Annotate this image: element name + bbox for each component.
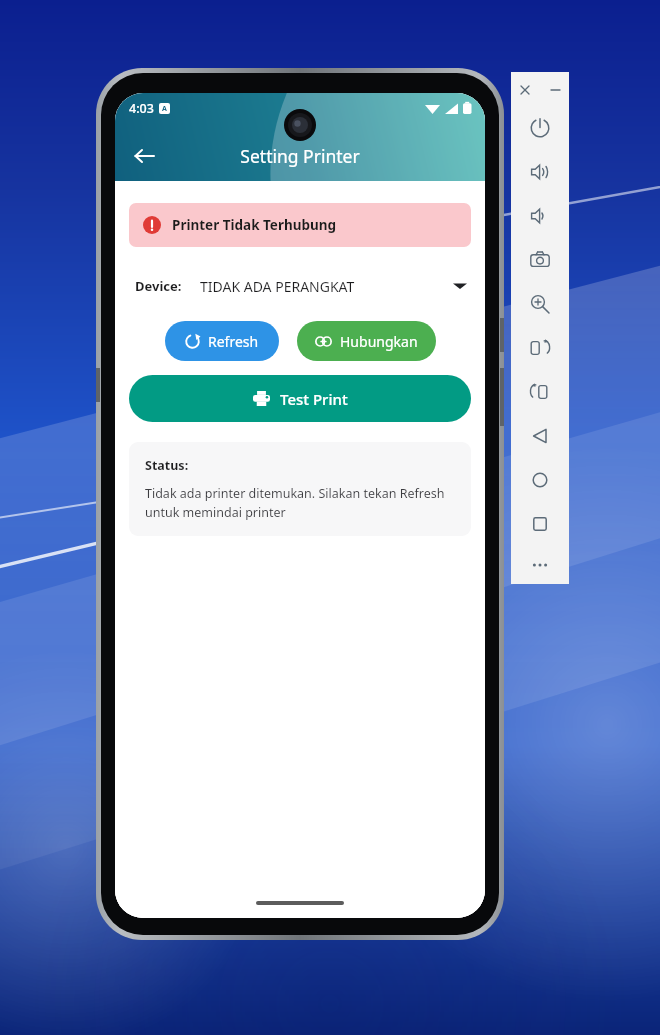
button[interactable]: Back bbox=[511, 414, 569, 458]
staticText: Refresh bbox=[208, 332, 259, 351]
staticText: 4:03 bbox=[129, 100, 154, 117]
button[interactable]: Volume up bbox=[511, 150, 569, 194]
staticText: Device: bbox=[135, 277, 182, 295]
staticText: Printer Tidak Terhubung bbox=[172, 216, 337, 234]
button[interactable]: More bbox=[511, 546, 569, 584]
button[interactable]: Screenshot bbox=[511, 238, 569, 282]
staticText: A bbox=[162, 104, 167, 114]
staticText: Test Print bbox=[280, 389, 348, 409]
staticText: Status: bbox=[145, 457, 189, 474]
staticText: Hubungkan bbox=[340, 332, 418, 351]
staticText: TIDAK ADA PERANGKAT bbox=[200, 277, 355, 296]
button[interactable]: Hubungkan bbox=[297, 321, 436, 361]
button[interactable]: Volume down bbox=[511, 194, 569, 238]
button[interactable]: Zoom bbox=[511, 282, 569, 326]
button[interactable]: Device: bbox=[129, 273, 471, 299]
button[interactable]: Minimize bbox=[545, 80, 565, 100]
button[interactable]: Status: bbox=[129, 442, 471, 536]
staticText: Setting Printer bbox=[240, 144, 360, 168]
button[interactable]: Overview bbox=[511, 502, 569, 546]
button[interactable]: Refresh bbox=[165, 321, 279, 361]
button[interactable]: Back bbox=[123, 135, 165, 177]
button[interactable]: Rotate right bbox=[511, 370, 569, 414]
button[interactable]: Power bbox=[511, 106, 569, 150]
button[interactable]: Printer Tidak Terhubung bbox=[129, 203, 471, 247]
staticText: Tidak ada printer ditemukan. Silakan tek… bbox=[145, 485, 455, 521]
button[interactable]: Rotate left bbox=[511, 326, 569, 370]
button[interactable]: Close bbox=[515, 80, 535, 100]
button[interactable]: Home bbox=[511, 458, 569, 502]
button[interactable]: Test Print bbox=[129, 375, 471, 422]
